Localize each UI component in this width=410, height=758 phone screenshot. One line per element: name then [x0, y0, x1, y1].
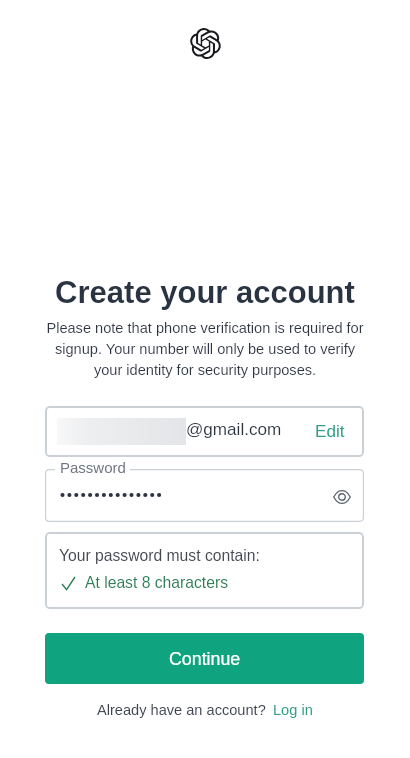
staticText: @gmail.com: [186, 420, 282, 439]
button[interactable]: Show password: [333, 490, 351, 504]
button[interactable]: Show password: [45, 469, 364, 522]
staticText: Create your account: [55, 275, 355, 310]
staticText: Log in: [273, 702, 313, 718]
staticText: Continue: [169, 649, 241, 669]
button[interactable]: Edit: [299, 410, 364, 453]
other: OpenAI logo: [190, 28, 221, 59]
staticText: Already have an account?: [97, 702, 266, 718]
staticText: Edit: [315, 422, 345, 441]
staticText: Password: [60, 459, 126, 476]
button[interactable]: Log in: [273, 702, 313, 718]
staticText: Please note that phone verification is r…: [40, 320, 370, 378]
staticText: At least 8 characters: [85, 574, 228, 592]
staticText: Your password must contain:: [59, 547, 260, 565]
button[interactable]: Continue: [45, 633, 364, 684]
